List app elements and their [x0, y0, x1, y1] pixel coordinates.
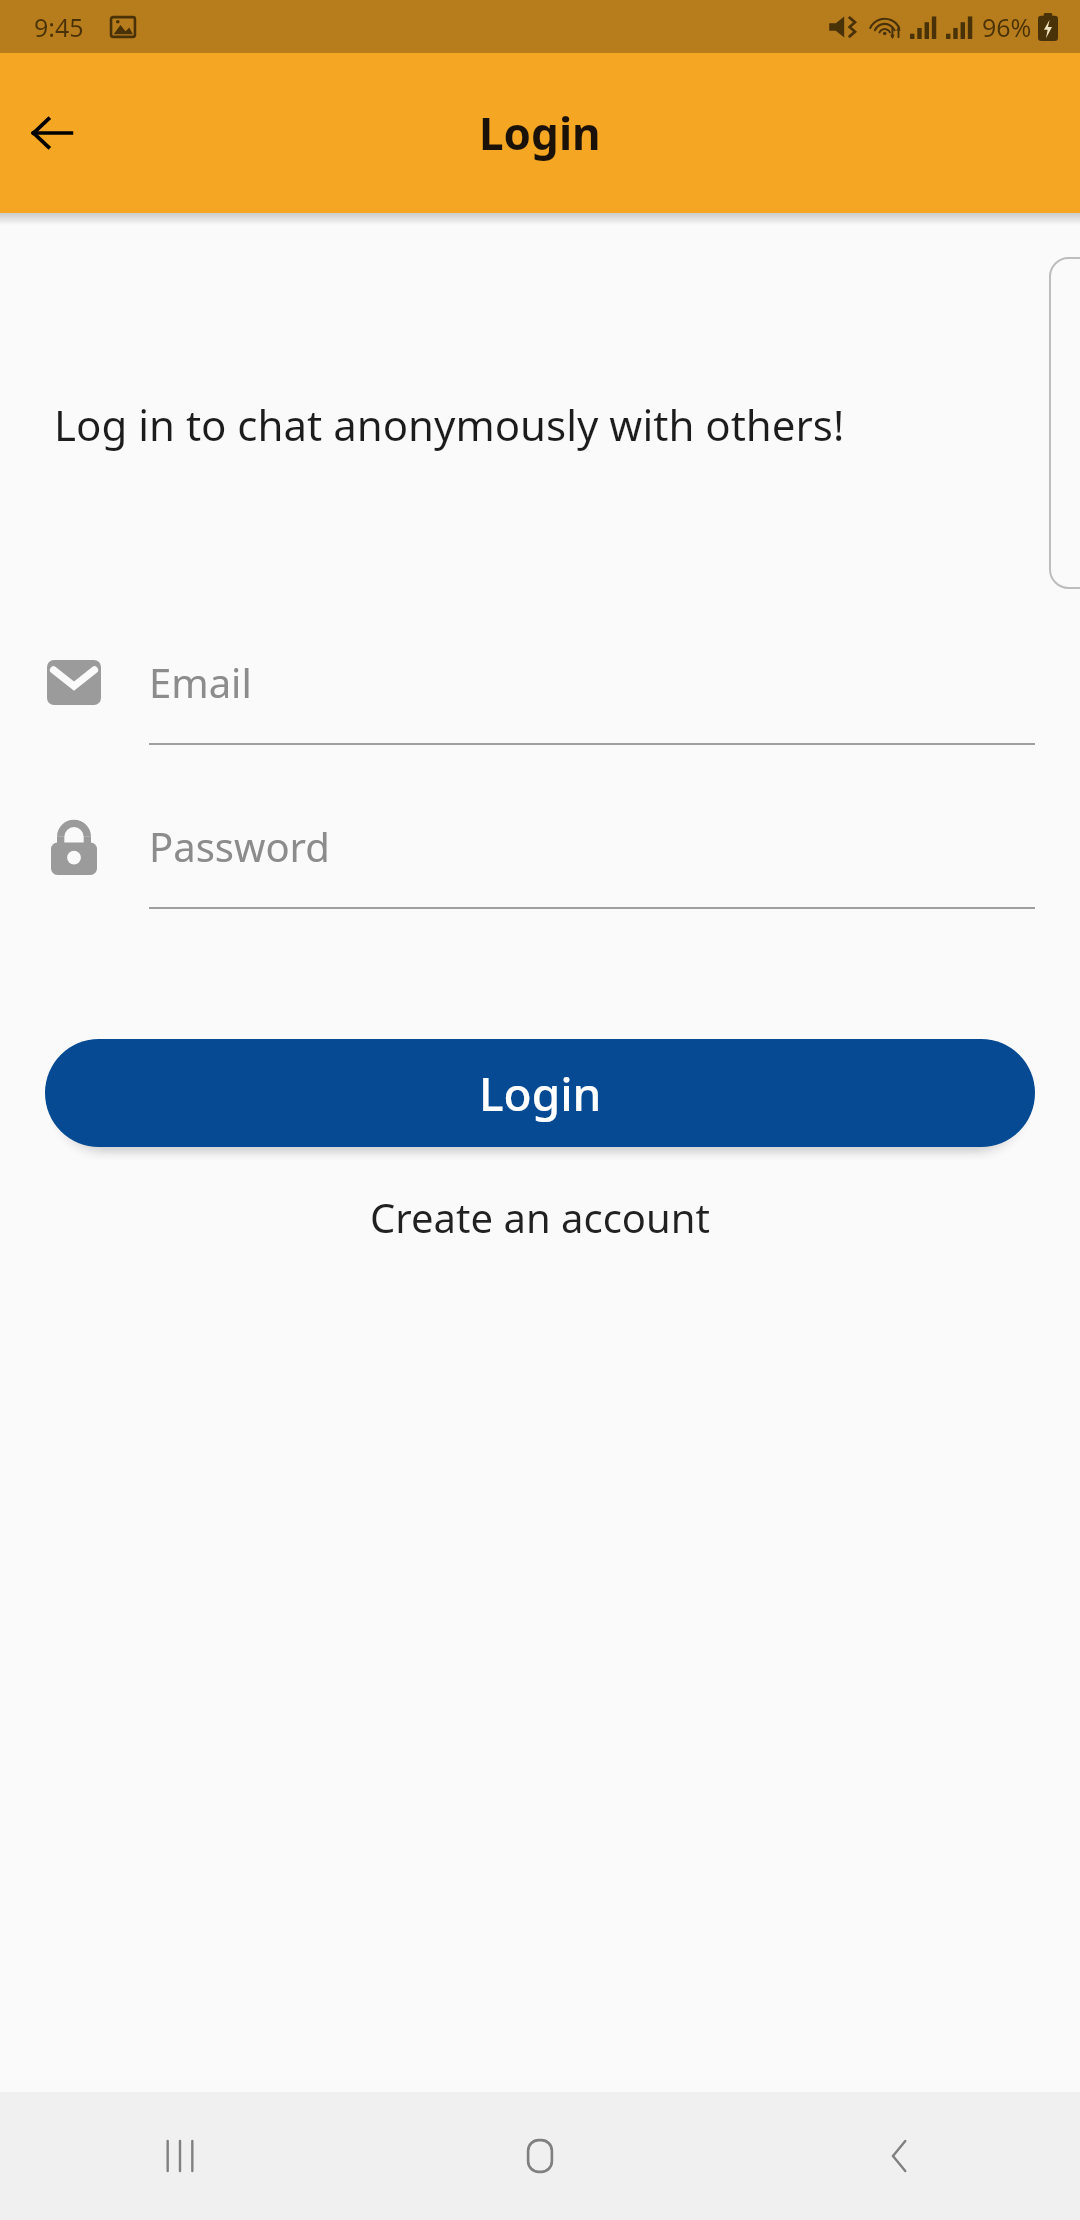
staticText: 96% — [982, 10, 1032, 44]
button[interactable]: Recent apps — [0, 2092, 360, 2220]
staticText: Login — [479, 103, 601, 163]
staticText: Create an account — [370, 1190, 710, 1244]
staticText: Email — [149, 655, 252, 709]
staticText: Log in to chat anonymously with others! — [54, 396, 845, 453]
button[interactable]: Back — [720, 2092, 1080, 2220]
staticText: 9:45 — [34, 10, 84, 44]
button[interactable]: Back — [14, 95, 90, 171]
button[interactable]: Password — [0, 817, 1080, 909]
button[interactable]: Home — [360, 2092, 720, 2220]
button[interactable]: Email — [0, 653, 1080, 745]
staticText: Password — [149, 819, 330, 873]
button[interactable]: Create an account — [0, 1190, 1080, 1244]
button[interactable]: Login — [45, 1039, 1035, 1147]
staticText: Login — [479, 1062, 602, 1125]
